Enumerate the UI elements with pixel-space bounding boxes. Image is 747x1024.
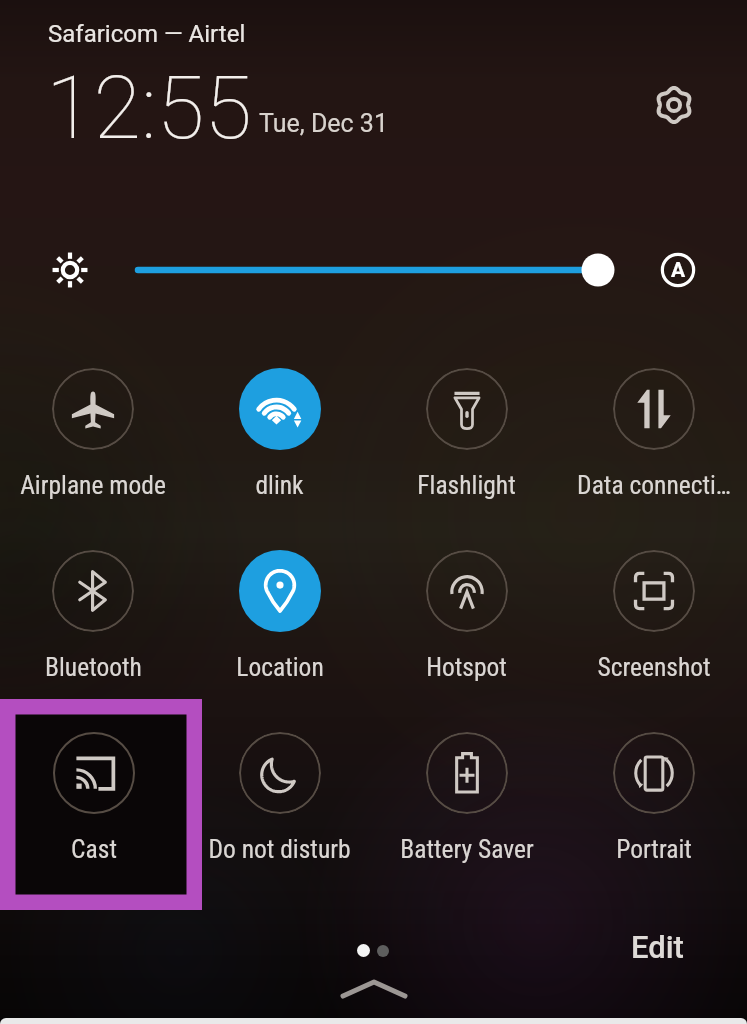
button[interactable]: Brightness slider (130, 246, 620, 294)
staticText: A (671, 258, 686, 283)
button[interactable]: dlink (186, 338, 373, 520)
staticText: Flashlight (417, 470, 516, 500)
staticText: 12:55 (46, 57, 252, 159)
button[interactable]: Airplane mode (0, 338, 186, 520)
staticText: Battery Saver (400, 834, 534, 864)
button[interactable]: Edit (631, 929, 684, 965)
button[interactable]: Hotspot (373, 520, 560, 702)
staticText: Bluetooth (45, 652, 142, 682)
button[interactable]: Collapse quick settings (320, 966, 428, 1012)
button[interactable]: Screenshot (560, 520, 747, 702)
other: Page 1 of 2 (357, 944, 389, 957)
button[interactable]: Cast (0, 702, 186, 884)
button[interactable]: Do not disturb (186, 702, 373, 884)
button[interactable]: Portrait (560, 702, 747, 884)
staticText: Airplane mode (20, 470, 166, 500)
staticText: Screenshot (597, 652, 711, 682)
button[interactable]: Location (186, 520, 373, 702)
staticText: Cast (70, 834, 116, 864)
staticText: Safaricom — Airtel (48, 20, 246, 48)
staticText: dlink (255, 470, 304, 500)
button[interactable]: Settings (648, 79, 700, 131)
button[interactable]: Flashlight (373, 338, 560, 520)
button[interactable]: Cast (0, 702, 187, 864)
staticText: Edit (631, 929, 684, 965)
button[interactable]: Data connecti… (560, 338, 747, 520)
staticText: Tue, Dec 31 (259, 109, 388, 138)
button[interactable]: Brightness (50, 250, 90, 290)
staticText: Hotspot (426, 652, 507, 682)
button[interactable]: Battery Saver (373, 702, 560, 884)
staticText: Location (236, 652, 324, 682)
staticText: Cast (71, 834, 117, 864)
staticText: Portrait (616, 834, 692, 864)
staticText: Do not disturb (208, 834, 351, 864)
button[interactable]: Bluetooth (0, 520, 186, 702)
staticText: Data connecti… (577, 470, 731, 500)
button[interactable]: Auto brightness (654, 246, 702, 294)
